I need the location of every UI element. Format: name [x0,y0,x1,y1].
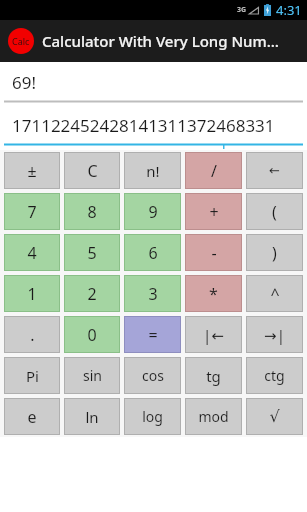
staticText: 171122452428141311372468331 [12,114,275,137]
button[interactable]: cos [124,357,181,394]
button[interactable]: mod [185,398,242,435]
button[interactable]: log [124,398,181,435]
staticText: n! [146,161,160,181]
staticText: 4:31 [276,1,302,19]
button[interactable]: Decimal point [4,316,60,353]
button[interactable]: e [4,398,60,435]
staticText: 5 [87,242,97,264]
staticText: / [211,160,217,182]
button[interactable]: Move cursor to end [246,316,303,353]
staticText: Pi [26,366,39,386]
button[interactable]: 1 [4,275,60,312]
staticText: 6 [148,242,158,264]
staticText: 0 [87,324,97,346]
button[interactable]: 0 [64,316,120,353]
button[interactable]: ) [246,234,303,271]
button[interactable]: 5 [64,234,120,271]
staticText: ln [85,407,99,427]
staticText: sin [83,366,102,385]
button[interactable]: 4 [4,234,60,271]
button[interactable]: Equals [124,316,181,353]
staticText: |← [203,325,224,345]
staticText: 1 [27,283,37,305]
button[interactable]: Plus [185,193,242,230]
button[interactable]: 3 [124,275,181,312]
staticText: cos [142,366,164,385]
button[interactable]: Square root [246,398,303,435]
staticText: 2 [87,283,97,305]
staticText: - [211,242,217,264]
staticText: 4 [27,242,37,264]
staticText: ^ [270,283,280,305]
button[interactable]: C [64,152,120,189]
button[interactable]: Multiply [185,275,242,312]
staticText: √ [269,407,280,426]
staticText: 3 [148,283,158,305]
staticText: Calc [12,35,30,47]
staticText: ± [27,160,37,182]
staticText: tg [206,366,221,386]
staticText: . [30,324,35,346]
staticText: 8 [87,201,97,223]
button[interactable]: ( [246,193,303,230]
staticText: = [148,324,158,346]
button[interactable]: Plus minus sign [4,152,60,189]
staticText: ( [272,201,277,223]
staticText: →| [264,325,285,345]
button[interactable]: 2 [64,275,120,312]
button[interactable]: Backspace [246,152,303,189]
staticText: 3G [237,5,247,15]
staticText: 7 [27,201,37,223]
button[interactable]: Move cursor to start [185,316,242,353]
button[interactable]: 7 [4,193,60,230]
button[interactable]: 6 [124,234,181,271]
staticText: ctg [264,366,285,385]
button[interactable]: n! [124,152,181,189]
button[interactable]: 9 [124,193,181,230]
staticText: e [27,406,37,428]
button[interactable]: tg [185,357,242,394]
staticText: Calculator With Very Long Num… [42,31,279,51]
button[interactable]: Pi [4,357,60,394]
staticText: mod [198,407,229,426]
button[interactable]: sin [64,357,120,394]
staticText: * [209,283,218,305]
button[interactable]: ctg [246,357,303,394]
button[interactable]: Minus [185,234,242,271]
staticText: C [87,160,98,182]
button[interactable]: 8 [64,193,120,230]
button[interactable]: Power [246,275,303,312]
staticText: 69! [12,71,37,94]
button[interactable]: Divide [185,152,242,189]
staticText: + [209,201,219,223]
staticText: 9 [148,201,158,223]
button[interactable]: ln [64,398,120,435]
staticText: ← [269,163,280,178]
staticText: log [142,407,163,426]
staticText: ) [272,242,277,264]
